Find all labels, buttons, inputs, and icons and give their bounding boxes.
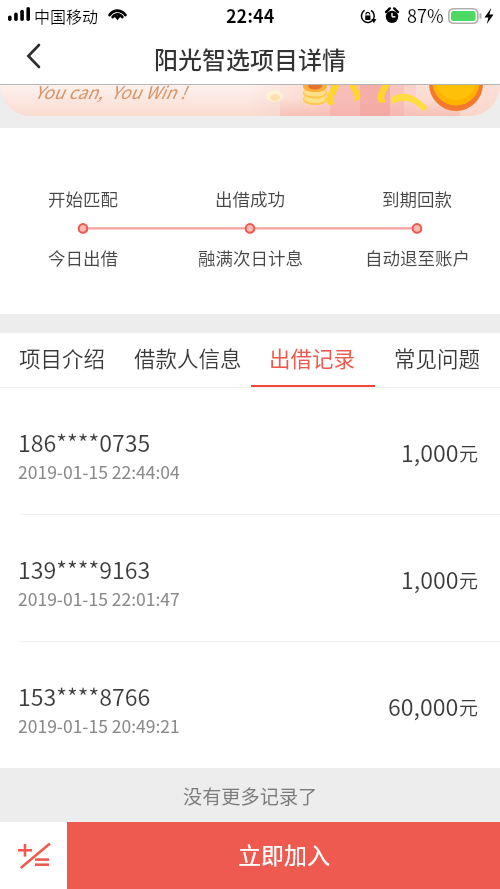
staticText: 60,000 [388,689,459,722]
staticText: 到期回款 [382,186,452,211]
staticText: 1,000 [401,562,459,595]
button[interactable]: Calculator [0,822,67,889]
staticText: 借款人信息 [134,342,242,373]
staticText: 出借成功 [215,186,285,211]
staticText: 1,000 [401,435,459,468]
staticText: You can, You Win ! [34,85,186,104]
staticText: 出借记录 [269,342,356,373]
staticText: 中国移动 [34,4,99,27]
staticText: 阳光智选项目详情 [154,41,346,76]
button[interactable]: 借款人信息 [125,333,250,388]
staticText: 开始匹配 [48,186,118,211]
staticText: 项目介绍 [19,342,106,373]
button[interactable]: 186****0735 [0,388,500,515]
button[interactable]: 项目介绍 [0,333,125,388]
button[interactable]: Back [0,36,58,85]
staticText: 常见问题 [394,342,481,373]
button[interactable]: 153****8766 [0,642,500,769]
staticText: 22:44 [226,2,275,28]
staticText: 今日出借 [48,245,118,270]
button[interactable]: 139****9163 [0,515,500,642]
staticText: 2019-01-15 22:44:04 [18,459,180,484]
staticText: 2019-01-15 20:49:21 [18,713,180,738]
staticText: 融满次日计息 [198,245,303,270]
staticText: 87% [407,2,444,28]
staticText: 2019-01-15 22:01:47 [18,586,180,611]
staticText: 153****8766 [18,679,151,712]
staticText: 自动退至账户 [365,245,470,270]
staticText: 元 [459,566,479,594]
button[interactable]: 立即加入 [67,822,500,889]
button[interactable]: 出借记录 [250,333,375,388]
staticText: 186****0735 [18,425,151,458]
staticText: 元 [459,439,479,467]
staticText: 元 [459,693,479,721]
staticText: 没有更多记录了 [183,782,318,810]
staticText: 139****9163 [18,552,151,585]
staticText: 立即加入 [238,837,330,870]
button[interactable]: 常见问题 [375,333,500,388]
